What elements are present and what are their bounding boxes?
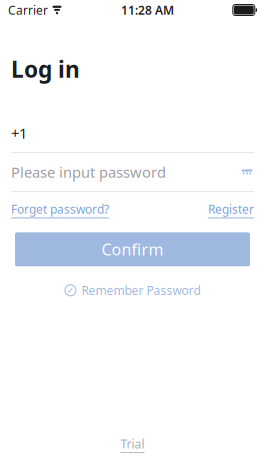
- staticText: 11:28 AM: [121, 2, 174, 18]
- staticText: Confirm: [101, 239, 163, 260]
- staticText: Trial: [120, 436, 144, 452]
- button[interactable]: ✓: [58, 278, 206, 302]
- staticText: +1: [11, 123, 27, 143]
- staticText: Log in: [11, 54, 80, 84]
- button[interactable]: Forget password?: [11, 201, 109, 218]
- button[interactable]: Trial: [114, 430, 150, 459]
- staticText: Carrier: [8, 2, 48, 18]
- button[interactable]: Show password: [232, 158, 254, 186]
- button[interactable]: Confirm: [15, 232, 250, 266]
- staticText: Remember Password: [81, 282, 200, 298]
- staticText: Register: [208, 201, 254, 217]
- staticText: Forget password?: [11, 201, 109, 217]
- button[interactable]: Register: [208, 201, 254, 218]
- staticText: Please input password: [11, 162, 166, 182]
- staticText: ✓: [66, 285, 74, 296]
